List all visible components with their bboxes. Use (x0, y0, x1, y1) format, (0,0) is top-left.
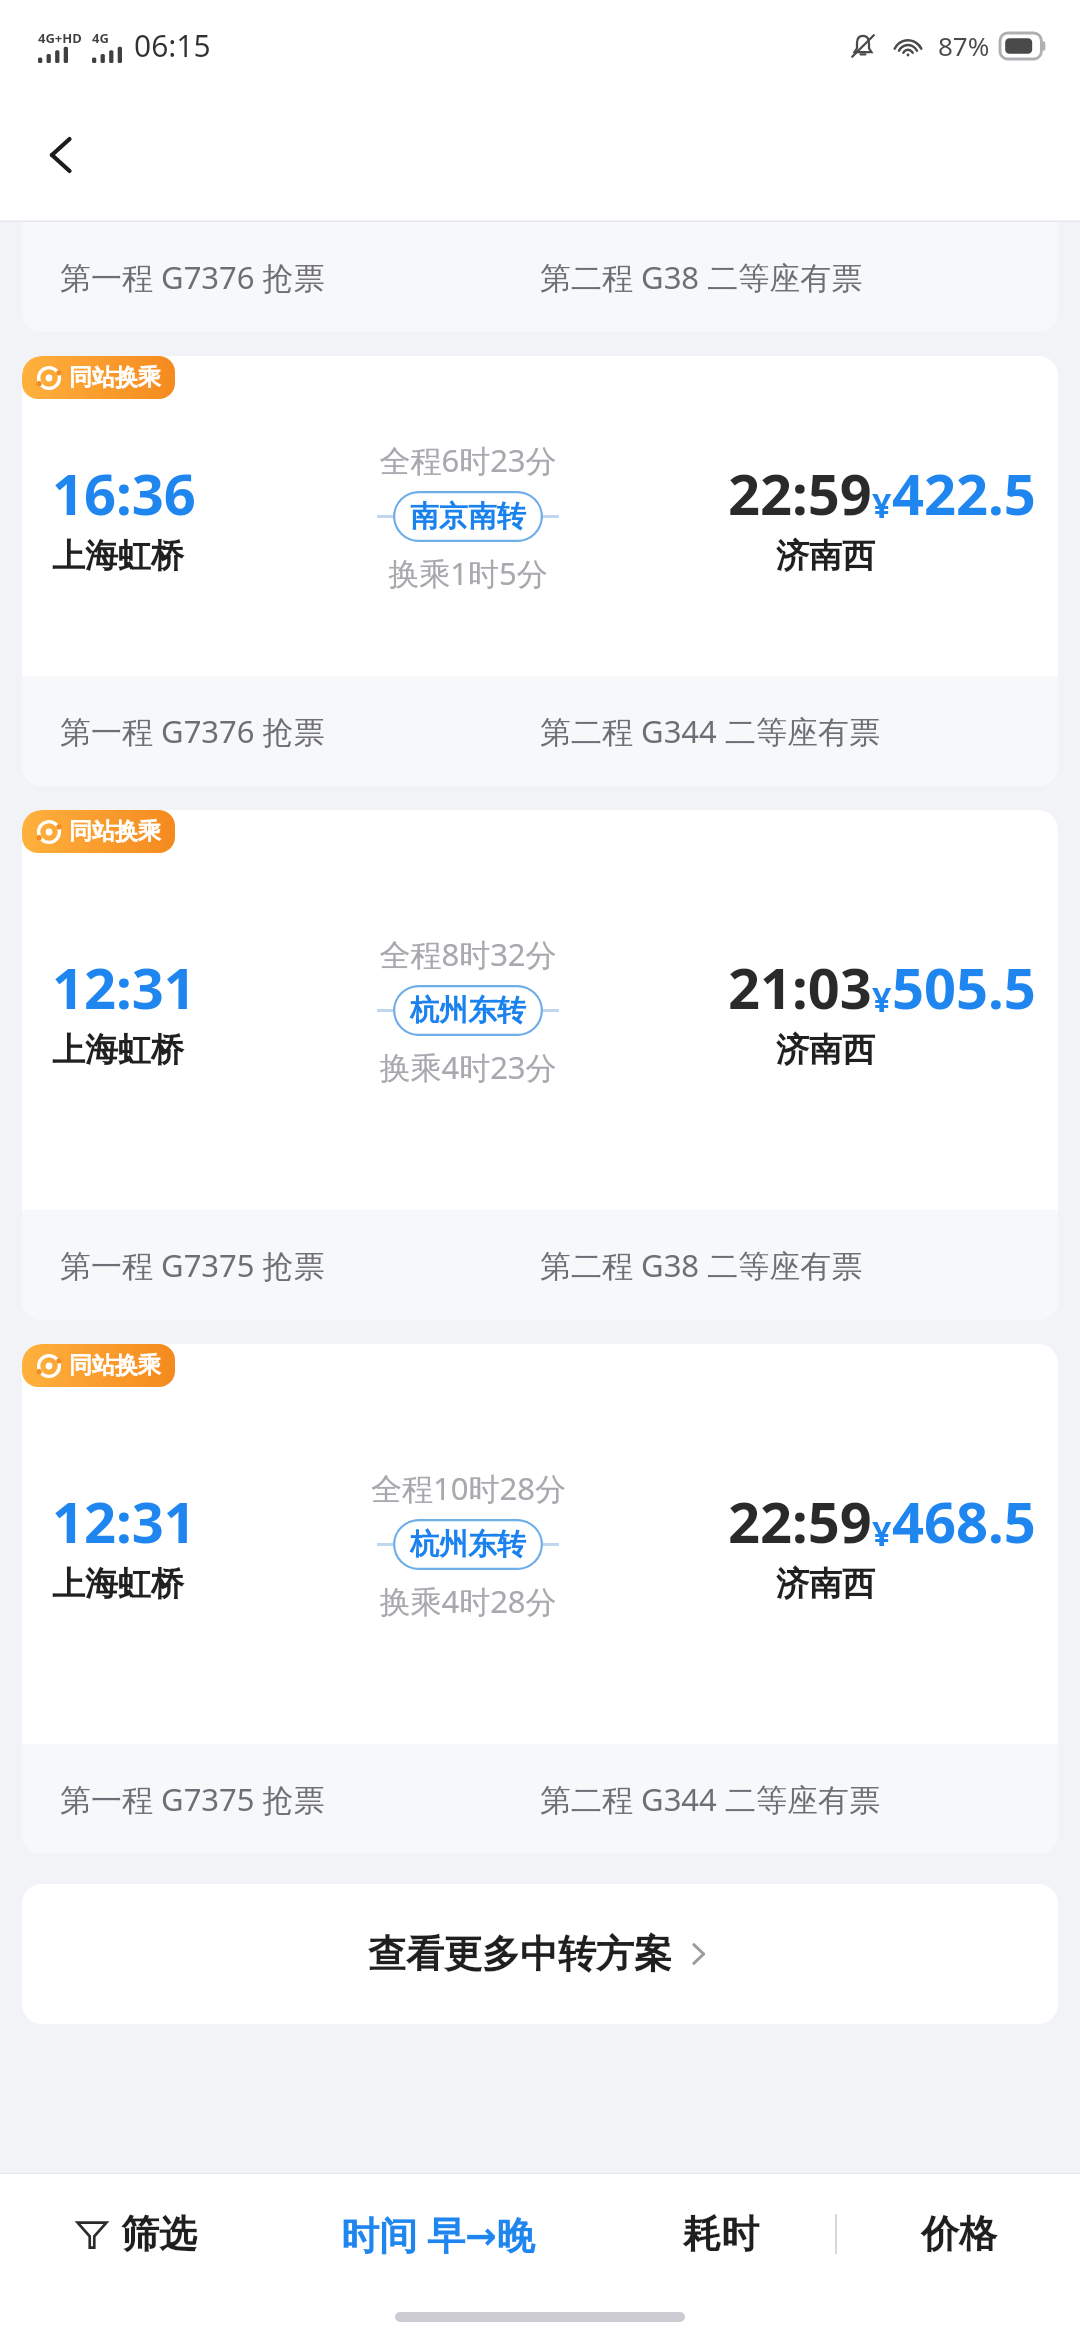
staticText: 第一程 G7375 抢票 (60, 1778, 325, 1820)
staticText: 第一程 G7376 抢票 (60, 710, 325, 752)
staticText: 上海虹桥 (52, 1029, 184, 1071)
staticText: 耗时 (683, 2210, 759, 2258)
button[interactable]: 同站换乘 (22, 1344, 1058, 1854)
staticText: 全程6时23分 (379, 439, 557, 481)
staticText: 筛选 (121, 2210, 197, 2258)
button[interactable]: 耗时 (606, 2174, 835, 2294)
staticText: 换乘4时28分 (379, 1580, 557, 1622)
staticText: 杭州东转 (410, 1526, 526, 1563)
staticText: 时间 早→晚 (341, 2208, 535, 2260)
staticText: 查看更多中转方案 (368, 1930, 672, 1978)
staticText: 换乘4时23分 (379, 1046, 557, 1088)
staticText: 同站换乘 (69, 1351, 161, 1380)
staticText: 同站换乘 (69, 363, 161, 392)
staticText: 468.5 (892, 1483, 1036, 1559)
staticText: 济南西 (776, 1029, 875, 1071)
staticText: 第二程 G344 二等座有票 (540, 1778, 880, 1820)
staticText: ¥ (872, 482, 892, 528)
staticText: 全程10时28分 (371, 1467, 566, 1509)
staticText: 505.5 (892, 949, 1036, 1025)
button[interactable]: 筛选 (0, 2174, 269, 2294)
staticText: 换乘1时5分 (388, 552, 548, 594)
staticText: 第二程 G38 二等座有票 (540, 1244, 863, 1286)
staticText: 12:31 (52, 1483, 196, 1559)
staticText: 上海虹桥 (52, 535, 184, 577)
button[interactable]: 时间 早→晚 (269, 2174, 606, 2294)
button[interactable]: Back (14, 107, 110, 203)
staticText: 济南西 (776, 1563, 875, 1605)
button[interactable]: 同站换乘 (22, 810, 1058, 1320)
staticText: 第一程 G7376 抢票 (60, 256, 325, 298)
staticText: 南京南转 (410, 498, 526, 535)
staticText: 22:59 (728, 455, 872, 531)
button[interactable]: 同站换乘 (22, 356, 1058, 786)
staticText: 16:36 (52, 455, 196, 531)
staticText: ¥ (872, 1510, 892, 1556)
staticText: 12:31 (52, 949, 196, 1025)
staticText: 同站换乘 (69, 817, 161, 846)
staticText: 第一程 G7375 抢票 (60, 1244, 325, 1286)
staticText: 4G (92, 29, 109, 47)
staticText: ¥ (872, 976, 892, 1022)
staticText: 422.5 (892, 455, 1036, 531)
button[interactable]: 第一程 G7376 抢票 (22, 222, 1058, 332)
staticText: 第二程 G38 二等座有票 (540, 256, 863, 298)
staticText: 价格 (921, 2210, 997, 2258)
staticText: 济南西 (776, 535, 875, 577)
staticText: 06:15 (134, 25, 211, 66)
staticText: 22:59 (728, 1483, 872, 1559)
staticText: 21:03 (728, 949, 872, 1025)
staticText: 杭州东转 (410, 992, 526, 1029)
staticText: 上海虹桥 (52, 1563, 184, 1605)
button[interactable]: 价格 (837, 2174, 1080, 2294)
staticText: 4G+HD (38, 29, 82, 47)
staticText: 全程8时32分 (379, 933, 557, 975)
staticText: 第二程 G344 二等座有票 (540, 710, 880, 752)
button[interactable]: 查看更多中转方案 (22, 1884, 1058, 2024)
staticText: 87% (938, 28, 990, 63)
